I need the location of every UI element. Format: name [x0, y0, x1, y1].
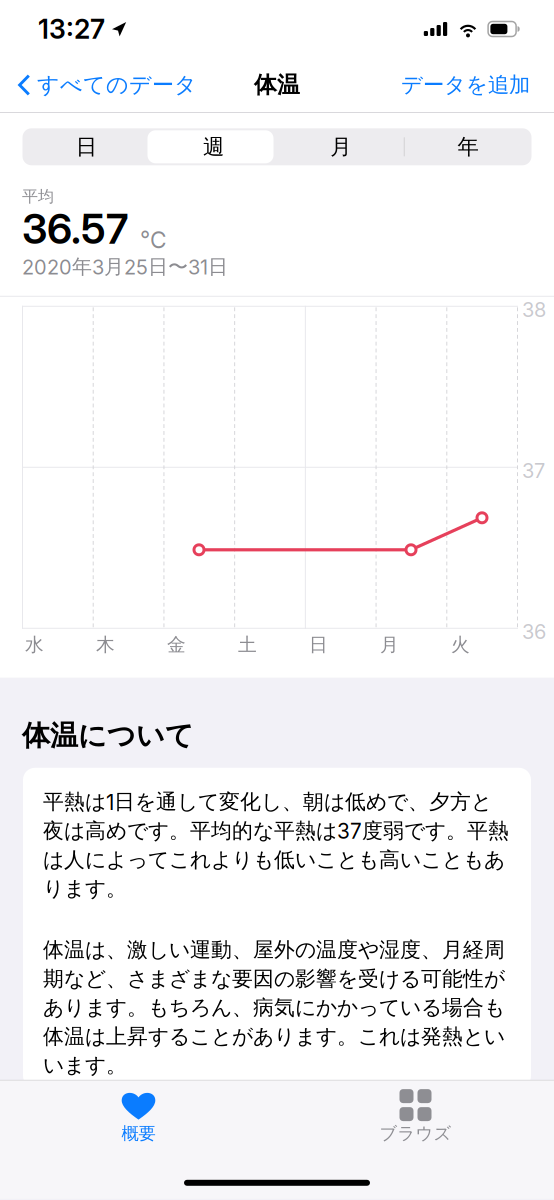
button[interactable]: 月 [277, 128, 404, 165]
staticText: 月 [380, 633, 399, 656]
staticText: 金 [167, 633, 186, 656]
staticText: 火 [451, 633, 470, 656]
staticText: 水 [25, 633, 44, 656]
button[interactable]: 概要 [0, 1081, 277, 1153]
staticText: 13:27 [38, 13, 105, 45]
staticText: 体温は、激しい運動、屋外の温度や湿度、月経周期など、さまざまな要因の影響を受ける… [43, 937, 505, 1078]
button[interactable]: データを追加 [391, 58, 554, 112]
staticText: 月 [330, 133, 351, 160]
staticText: 概要 [121, 1123, 155, 1144]
staticText: °C [140, 226, 167, 254]
staticText: 週 [203, 133, 224, 160]
staticText: 日 [309, 633, 328, 656]
staticText: データを追加 [401, 72, 530, 98]
staticText: 体温について [22, 718, 194, 753]
button[interactable]: すべてのデータ [0, 58, 207, 112]
button[interactable]: ブラウズ [277, 1081, 554, 1153]
staticText: 日 [76, 133, 97, 160]
staticText: 平熱は1日を通して変化し、朝は低めで、夕方と夜は高めです。平均的な平熱は37度弱… [43, 789, 509, 902]
button[interactable]: 日 [22, 128, 150, 165]
staticText: 2020年3月25日〜31日 [22, 254, 228, 279]
staticText: 36 [522, 620, 546, 644]
staticText: 年 [457, 133, 478, 160]
staticText: 38 [522, 298, 546, 322]
staticText: ブラウズ [379, 1123, 451, 1144]
button[interactable]: 年 [404, 128, 531, 165]
staticText: 木 [96, 633, 115, 656]
staticText: 平均 [22, 186, 54, 206]
staticText: すべてのデータ [37, 71, 197, 99]
staticText: 36.57 [22, 204, 128, 254]
staticText: 37 [522, 459, 545, 483]
button[interactable]: 週 [150, 128, 277, 165]
staticText: 体温 [254, 71, 300, 99]
staticText: 土 [238, 633, 257, 656]
